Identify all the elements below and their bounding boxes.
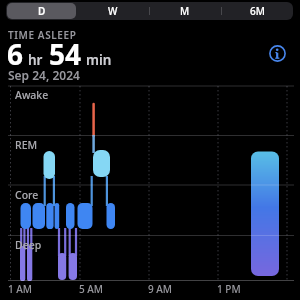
staticText: hr <box>28 51 43 69</box>
staticText: 6M <box>250 4 265 18</box>
staticText: min <box>86 51 112 69</box>
staticText: REM <box>15 138 38 152</box>
staticText: TIME ASLEEP <box>8 28 77 42</box>
button[interactable]: 6M <box>221 2 293 20</box>
button[interactable]: M <box>149 2 221 20</box>
staticText: 9 AM <box>148 282 173 296</box>
staticText: Core <box>15 188 39 202</box>
staticText: 54 <box>49 35 82 73</box>
staticText: W <box>108 4 118 18</box>
staticText: 1 PM <box>217 282 241 296</box>
button[interactable]: D <box>7 3 76 19</box>
button[interactable] <box>269 45 286 62</box>
staticText: Awake <box>15 88 49 102</box>
staticText: D <box>38 4 46 18</box>
staticText: 5 AM <box>79 282 104 296</box>
staticText: M <box>180 4 190 18</box>
staticText: 1 AM <box>8 282 33 296</box>
staticText: Sep 24, 2024 <box>8 67 80 83</box>
staticText: Deep <box>15 238 42 252</box>
staticText: 6 <box>7 35 24 73</box>
button[interactable]: W <box>77 2 149 20</box>
